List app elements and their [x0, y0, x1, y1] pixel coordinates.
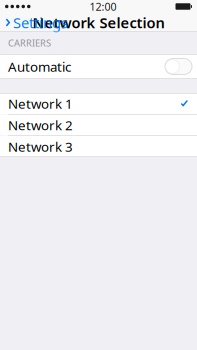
- staticText: Automatic: [8, 58, 71, 75]
- staticText: 12:00: [89, 0, 116, 14]
- button[interactable]: Automatic: [0, 54, 197, 79]
- staticText: Settings: [13, 13, 68, 32]
- staticText: CARRIERS: [8, 37, 51, 49]
- staticText: Network 1: [8, 95, 73, 112]
- button[interactable]: Network 3: [0, 136, 197, 157]
- staticText: Network 3: [8, 138, 73, 155]
- button[interactable]: Network 1: [0, 93, 197, 114]
- staticText: Network Selection: [32, 13, 164, 32]
- button[interactable]: Network 2: [0, 114, 197, 136]
- button[interactable]: Settings: [0, 10, 68, 35]
- staticText: Network 2: [8, 116, 73, 134]
